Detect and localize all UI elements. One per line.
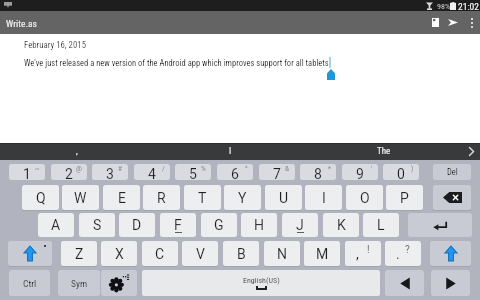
staticText: 5 bbox=[189, 166, 197, 180]
staticText: Write.as bbox=[6, 18, 37, 29]
button[interactable]: R bbox=[143, 185, 180, 210]
staticText: A bbox=[51, 217, 61, 233]
staticText: ) bbox=[411, 165, 414, 173]
staticText: 4 bbox=[148, 166, 156, 180]
staticText: 3 bbox=[106, 166, 114, 180]
button[interactable]: Backspace bbox=[433, 185, 471, 210]
button[interactable]: B bbox=[223, 241, 259, 266]
staticText: @ bbox=[76, 165, 82, 173]
button[interactable]: O bbox=[346, 185, 383, 210]
staticText: ^ bbox=[245, 165, 248, 173]
button[interactable]: I bbox=[305, 185, 342, 210]
button[interactable]: 8 bbox=[300, 164, 336, 180]
button[interactable]: F bbox=[160, 213, 196, 237]
button[interactable]: Drafts bbox=[426, 11, 444, 34]
button[interactable]: T bbox=[184, 185, 221, 210]
button[interactable]: Shift bbox=[430, 241, 471, 266]
button[interactable]: V bbox=[182, 241, 218, 266]
button[interactable]: 3 bbox=[92, 164, 128, 180]
button[interactable]: 7 bbox=[259, 164, 295, 180]
button[interactable]: Enter bbox=[408, 213, 472, 237]
button[interactable]: H bbox=[241, 213, 277, 237]
staticText: , bbox=[356, 246, 359, 262]
button[interactable]: , bbox=[37, 143, 117, 160]
staticText: ! bbox=[367, 244, 370, 256]
staticText: * bbox=[328, 165, 331, 173]
button[interactable]: Settings bbox=[101, 270, 137, 296]
staticText: 7 bbox=[273, 166, 281, 180]
staticText: 8 bbox=[314, 166, 322, 180]
staticText: & bbox=[285, 165, 290, 173]
button[interactable]: Move right bbox=[431, 270, 470, 296]
staticText: , bbox=[76, 146, 78, 157]
button[interactable]: 2 bbox=[51, 164, 87, 180]
button[interactable]: Del bbox=[433, 164, 471, 180]
staticText: B bbox=[237, 246, 246, 262]
button[interactable]: E bbox=[103, 185, 140, 210]
staticText: The bbox=[377, 146, 391, 157]
staticText: P bbox=[400, 190, 409, 206]
staticText: ~ bbox=[35, 165, 40, 173]
staticText: R bbox=[157, 190, 166, 206]
button[interactable]: I bbox=[190, 143, 270, 160]
button[interactable]: , bbox=[345, 241, 381, 266]
button[interactable]: M bbox=[304, 241, 340, 266]
button[interactable]: 5 bbox=[175, 164, 211, 180]
staticText: % bbox=[201, 165, 206, 173]
staticText: V bbox=[196, 246, 205, 262]
button[interactable]: J bbox=[282, 213, 318, 237]
button[interactable]: U bbox=[265, 185, 302, 210]
staticText: 6 bbox=[231, 166, 239, 180]
staticText: Ctrl bbox=[23, 278, 37, 289]
button[interactable]: Sym bbox=[58, 270, 100, 296]
button[interactable]: Z bbox=[61, 241, 97, 266]
button[interactable]: Ctrl bbox=[9, 270, 50, 296]
staticText: Del bbox=[447, 167, 458, 177]
button[interactable]: Publish bbox=[444, 11, 462, 34]
button[interactable]: G bbox=[201, 213, 237, 237]
button[interactable]: Move left bbox=[385, 270, 424, 296]
staticText: 2 bbox=[65, 166, 73, 180]
button[interactable]: X bbox=[101, 241, 137, 266]
staticText: ' bbox=[371, 165, 373, 173]
button[interactable]: N bbox=[264, 241, 300, 266]
button[interactable]: More options bbox=[463, 11, 480, 34]
button[interactable]: W bbox=[62, 185, 99, 210]
button[interactable]: L bbox=[363, 213, 399, 237]
button[interactable]: Space bbox=[142, 270, 380, 296]
button[interactable]: Y bbox=[224, 185, 261, 210]
staticText: 98% bbox=[437, 2, 450, 11]
button[interactable]: 9 bbox=[342, 164, 378, 180]
button[interactable]: More suggestions bbox=[462, 143, 480, 160]
staticText: E bbox=[118, 190, 126, 206]
button[interactable]: A bbox=[38, 213, 74, 237]
staticText: Q bbox=[36, 190, 46, 206]
button[interactable]: 6 bbox=[217, 164, 253, 180]
staticText: We've just released a new version of the… bbox=[24, 58, 331, 68]
button[interactable]: . bbox=[385, 241, 421, 266]
staticText: U bbox=[279, 190, 289, 206]
button[interactable]: P bbox=[386, 185, 423, 210]
staticText: 9 bbox=[356, 166, 364, 180]
button[interactable]: 4 bbox=[134, 164, 170, 180]
button[interactable]: 0 bbox=[383, 164, 419, 180]
button[interactable]: Q bbox=[22, 185, 59, 210]
button[interactable]: C bbox=[142, 241, 178, 266]
button[interactable]: 1 bbox=[9, 164, 45, 180]
staticText: C bbox=[155, 246, 165, 262]
staticText: I bbox=[229, 146, 232, 157]
staticText: English(US) bbox=[243, 276, 280, 285]
button[interactable]: D bbox=[119, 213, 155, 237]
staticText: . bbox=[396, 246, 400, 262]
button[interactable]: K bbox=[323, 213, 359, 237]
staticText: 1 bbox=[23, 166, 31, 180]
staticText: D bbox=[132, 217, 142, 233]
staticText: 0 bbox=[397, 166, 405, 180]
staticText: ? bbox=[405, 244, 410, 256]
button[interactable]: Shift bbox=[8, 241, 52, 266]
staticText: F bbox=[174, 217, 182, 233]
staticText: Z bbox=[75, 246, 84, 262]
button[interactable]: S bbox=[79, 213, 115, 237]
button[interactable]: The bbox=[344, 143, 424, 160]
staticText: J bbox=[296, 217, 304, 233]
